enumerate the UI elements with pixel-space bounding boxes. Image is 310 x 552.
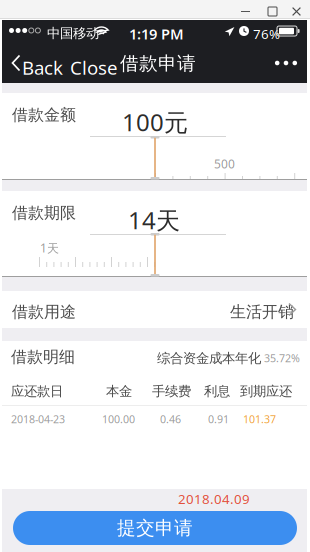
staticText: 到期应还 bbox=[240, 383, 292, 399]
staticText: 1天 bbox=[40, 240, 59, 256]
staticText: 提交申请 bbox=[117, 516, 193, 539]
staticText: 手续费 bbox=[152, 383, 191, 399]
staticText: 借款明细 bbox=[11, 347, 75, 367]
staticText: 生活开销 bbox=[230, 302, 294, 322]
staticText: 100.00 bbox=[102, 412, 135, 426]
staticText: 应还款日 bbox=[11, 383, 63, 399]
staticText: 利息 bbox=[204, 383, 230, 399]
staticText: 本金 bbox=[106, 383, 132, 399]
staticText: 1:19 PM bbox=[129, 24, 184, 43]
staticText: 借款申请 bbox=[120, 52, 196, 75]
staticText: 35.72% bbox=[264, 351, 300, 365]
staticText: 综合资金成本年化 bbox=[157, 350, 261, 366]
staticText: Back bbox=[22, 55, 63, 80]
button[interactable]: 提交申请 bbox=[13, 511, 297, 545]
button[interactable]: 借款用途 bbox=[2, 291, 307, 328]
staticText: 14天 bbox=[128, 204, 180, 236]
button[interactable]: Close bbox=[64, 43, 112, 83]
staticText: 101.37 bbox=[243, 412, 276, 426]
button[interactable]: Back bbox=[6, 43, 60, 83]
staticText: 76% bbox=[253, 25, 280, 43]
staticText: 借款金额 bbox=[12, 105, 76, 125]
staticText: 0.91 bbox=[208, 412, 229, 426]
button[interactable]: More options bbox=[266, 43, 306, 83]
staticText: 500 bbox=[214, 156, 235, 172]
staticText: 2018.04.09 bbox=[178, 490, 250, 508]
staticText: 借款期限 bbox=[12, 203, 76, 223]
staticText: Close bbox=[70, 55, 118, 80]
staticText: 借款用途 bbox=[12, 302, 76, 322]
staticText: 中国移动 bbox=[47, 25, 99, 41]
staticText: 0.46 bbox=[160, 412, 181, 426]
staticText: 100元 bbox=[122, 106, 188, 138]
staticText: 2018-04-23 bbox=[11, 412, 65, 426]
